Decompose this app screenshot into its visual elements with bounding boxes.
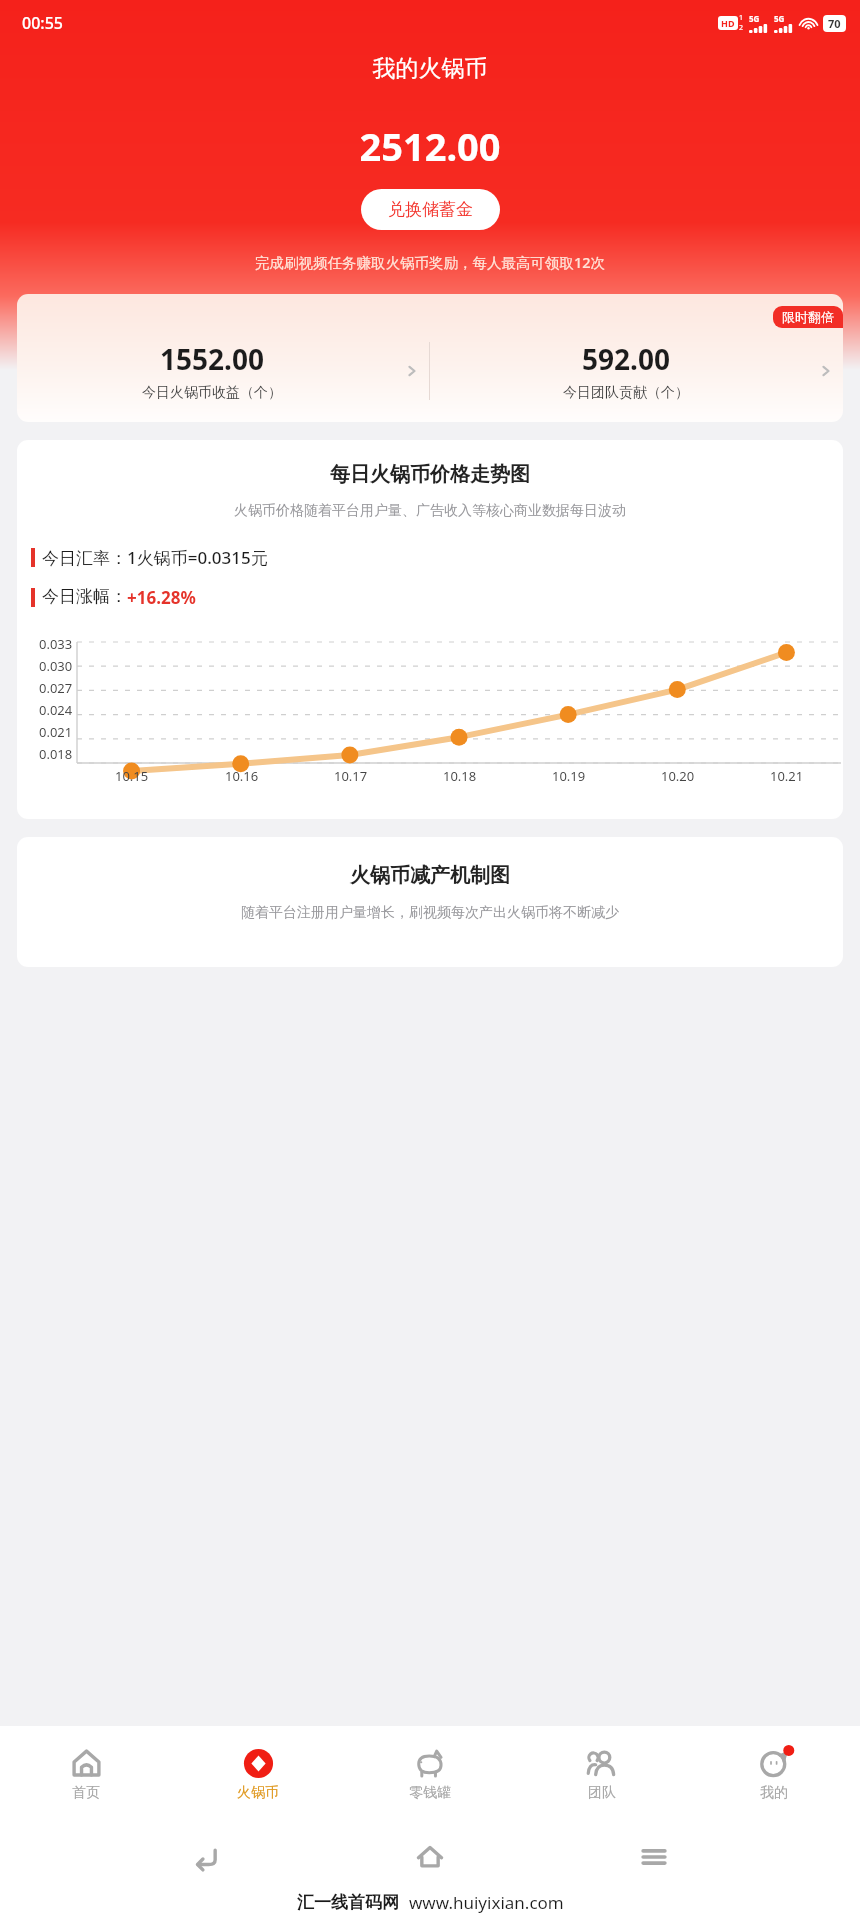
staticText: 70 bbox=[828, 16, 841, 31]
staticText: 今日团队贡献（个） bbox=[563, 384, 689, 402]
staticText: 完成刷视频任务赚取火锅币奖励，每人最高可领取12次 bbox=[0, 252, 860, 272]
button[interactable]: Back bbox=[190, 1840, 224, 1874]
button[interactable]: Home bbox=[413, 1840, 447, 1874]
staticText: 5G bbox=[774, 13, 785, 24]
staticText: 2512.00 bbox=[0, 120, 860, 172]
staticText: 我的 bbox=[760, 1784, 788, 1802]
button[interactable]: 1552.00 bbox=[17, 340, 429, 402]
staticText: 今日汇率：1火锅币=0.0315元 bbox=[42, 546, 268, 569]
other: 我的 bbox=[759, 1748, 790, 1779]
button[interactable]: 首页 bbox=[0, 1740, 172, 1810]
staticText: 5G bbox=[749, 13, 760, 24]
staticText: 随着平台注册用户量增长，刷视频每次产出火锅币将不断减少 bbox=[25, 904, 835, 922]
staticText: 零钱罐 bbox=[409, 1784, 451, 1802]
staticText: +16.28% bbox=[127, 586, 196, 609]
staticText: 2 bbox=[739, 23, 744, 33]
staticText: 限时翻倍 bbox=[782, 309, 834, 325]
button[interactable]: 兑换储蓄金 bbox=[361, 189, 500, 230]
button[interactable]: 火锅币 bbox=[172, 1740, 344, 1810]
other: 团队 bbox=[587, 1748, 618, 1779]
staticText: 火锅币 bbox=[237, 1784, 279, 1802]
button[interactable]: Recents bbox=[637, 1840, 671, 1874]
other: 火锅币 bbox=[243, 1748, 274, 1779]
staticText: 首页 bbox=[72, 1784, 100, 1802]
button[interactable]: 我的 bbox=[688, 1740, 860, 1810]
staticText: 10.16 bbox=[225, 767, 259, 785]
staticText: 1 bbox=[739, 13, 744, 23]
staticText: 0.018 bbox=[39, 745, 73, 763]
staticText: 10.21 bbox=[770, 767, 804, 785]
other: 首页 bbox=[71, 1748, 102, 1779]
staticText: 兑换储蓄金 bbox=[388, 199, 473, 220]
staticText: 0.027 bbox=[39, 679, 73, 697]
staticText: 我的火锅币 bbox=[0, 54, 860, 83]
button[interactable]: 592.00 bbox=[430, 340, 843, 402]
staticText: 10.15 bbox=[115, 767, 149, 785]
staticText: 今日涨幅： bbox=[42, 586, 127, 607]
staticText: 10.17 bbox=[334, 767, 368, 785]
staticText: 0.021 bbox=[39, 723, 73, 741]
staticText: 0.030 bbox=[39, 657, 73, 675]
button[interactable]: 零钱罐 bbox=[344, 1740, 516, 1810]
staticText: 10.18 bbox=[443, 767, 477, 785]
staticText: 每日火锅币价格走势图 bbox=[17, 462, 843, 487]
staticText: 0.033 bbox=[39, 635, 73, 653]
staticText: 火锅币价格随着平台用户量、广告收入等核心商业数据每日波动 bbox=[25, 502, 835, 520]
staticText: HD bbox=[721, 17, 735, 29]
other: 零钱罐 bbox=[415, 1748, 446, 1779]
staticText: 592.00 bbox=[582, 340, 670, 378]
staticText: 火锅币减产机制图 bbox=[17, 863, 843, 888]
staticText: 10.20 bbox=[661, 767, 695, 785]
staticText: 1552.00 bbox=[160, 340, 264, 378]
staticText: 汇一线首码网 bbox=[297, 1892, 399, 1913]
staticText: 00:55 bbox=[22, 12, 63, 34]
staticText: www.huiyixian.com bbox=[409, 1891, 564, 1914]
staticText: 0.024 bbox=[39, 701, 73, 719]
staticText: 今日火锅币收益（个） bbox=[142, 384, 282, 402]
staticText: 10.19 bbox=[552, 767, 586, 785]
button[interactable]: 团队 bbox=[516, 1740, 688, 1810]
staticText: 团队 bbox=[588, 1784, 616, 1802]
